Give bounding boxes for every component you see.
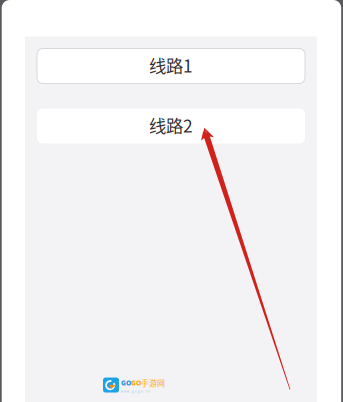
staticText: GO (121, 378, 131, 387)
staticText: 手游网 (141, 377, 165, 389)
button[interactable]: 线路2 (37, 108, 305, 143)
staticText: 线路1 (149, 52, 193, 78)
staticText: w w w . g o g o . c n (121, 390, 150, 393)
staticText: 线路2 (149, 112, 193, 138)
button[interactable]: 线路1 (37, 48, 305, 83)
staticText: GO (131, 378, 141, 387)
